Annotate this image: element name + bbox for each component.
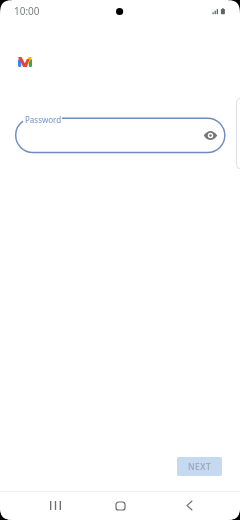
staticText: NEXT xyxy=(188,461,212,473)
button[interactable]: Home xyxy=(105,491,136,520)
button[interactable]: Back xyxy=(174,491,204,520)
button[interactable]: Show password xyxy=(202,127,219,144)
button[interactable]: NEXT xyxy=(177,457,222,476)
button[interactable]: Recents xyxy=(40,491,70,520)
staticText: Password xyxy=(25,114,62,125)
staticText: 10:00 xyxy=(14,4,40,18)
